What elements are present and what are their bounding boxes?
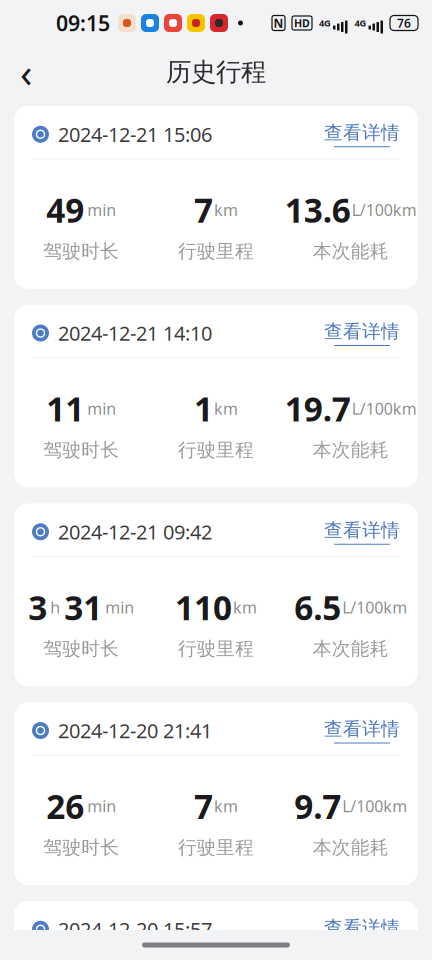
staticText: HD bbox=[294, 16, 310, 30]
staticText: 2024-12-21 15:06 bbox=[58, 121, 212, 148]
staticText: 本次能耗 bbox=[313, 836, 389, 859]
staticText: 6.5 bbox=[294, 585, 341, 629]
staticText: 76 bbox=[397, 15, 411, 31]
staticText: 查看详情 bbox=[324, 320, 400, 343]
button[interactable]: 查看详情 bbox=[324, 718, 400, 743]
staticText: 查看详情 bbox=[324, 718, 400, 740]
staticText: min bbox=[87, 199, 116, 220]
staticText: 行驶里程 bbox=[178, 240, 254, 263]
button[interactable]: 查看详情 bbox=[324, 121, 400, 147]
staticText: min bbox=[105, 597, 134, 618]
staticText: 驾驶时长 bbox=[43, 836, 119, 859]
staticText: 19.7 bbox=[285, 386, 351, 431]
staticText: 查看详情 bbox=[324, 519, 400, 542]
staticText: 行驶里程 bbox=[178, 836, 254, 859]
staticText: 4G bbox=[319, 17, 331, 29]
staticText: 2024-12-21 09:42 bbox=[58, 518, 212, 545]
button[interactable]: 2024-12-21 14:10 bbox=[14, 305, 418, 488]
staticText: 4G bbox=[354, 17, 366, 29]
button[interactable]: 查看详情 bbox=[324, 519, 400, 545]
button[interactable]: 返回 bbox=[0, 48, 52, 96]
staticText: h bbox=[50, 597, 60, 618]
staticText: L/100km bbox=[352, 199, 417, 220]
staticText: 1 bbox=[194, 386, 213, 431]
staticText: L/100km bbox=[342, 795, 407, 816]
button[interactable]: 查看详情 bbox=[324, 320, 400, 346]
staticText: km bbox=[214, 398, 238, 419]
staticText: N bbox=[273, 15, 283, 31]
staticText: 3 bbox=[28, 585, 47, 629]
staticText: 驾驶时长 bbox=[43, 240, 119, 263]
staticText: 2024-12-20 21:41 bbox=[58, 717, 212, 744]
staticText: 历史行程 bbox=[166, 56, 266, 87]
staticText: 26 bbox=[46, 784, 84, 828]
staticText: 驾驶时长 bbox=[43, 439, 119, 461]
staticText: km bbox=[233, 597, 257, 618]
staticText: 本次能耗 bbox=[313, 439, 389, 461]
staticText: 查看详情 bbox=[324, 121, 400, 144]
staticText: L/100km bbox=[352, 398, 417, 419]
button[interactable]: 查看详情 bbox=[324, 916, 400, 942]
button[interactable]: 2024-12-21 15:06 bbox=[14, 106, 418, 289]
button[interactable]: 2024-12-20 21:41 bbox=[14, 702, 418, 885]
staticText: 9.7 bbox=[294, 784, 341, 828]
staticText: ‹ bbox=[20, 45, 32, 98]
staticText: 2024-12-21 14:10 bbox=[58, 320, 212, 346]
staticText: 11 bbox=[46, 386, 84, 431]
staticText: 7 bbox=[194, 784, 213, 828]
staticText: km bbox=[214, 199, 238, 220]
staticText: km bbox=[214, 795, 238, 816]
staticText: 本次能耗 bbox=[313, 240, 389, 263]
staticText: min bbox=[87, 795, 116, 816]
button[interactable]: 2024-12-21 09:42 bbox=[14, 503, 418, 686]
staticText: 查看详情 bbox=[324, 916, 400, 939]
staticText: 110 bbox=[175, 585, 232, 629]
button[interactable]: 2024-12-20 15:57 bbox=[14, 901, 418, 960]
staticText: min bbox=[87, 398, 116, 419]
staticText: 49 bbox=[46, 188, 84, 232]
staticText: 13.6 bbox=[285, 188, 351, 232]
staticText: 本次能耗 bbox=[313, 637, 389, 660]
staticText: 行驶里程 bbox=[178, 439, 254, 461]
staticText: 行驶里程 bbox=[178, 637, 254, 660]
staticText: 09:15 bbox=[56, 9, 110, 37]
staticText: 驾驶时长 bbox=[43, 637, 119, 660]
staticText: 7 bbox=[194, 188, 213, 232]
staticText: 31 bbox=[64, 585, 102, 629]
staticText: 2024-12-20 15:57 bbox=[58, 916, 212, 943]
staticText: L/100km bbox=[342, 597, 407, 618]
